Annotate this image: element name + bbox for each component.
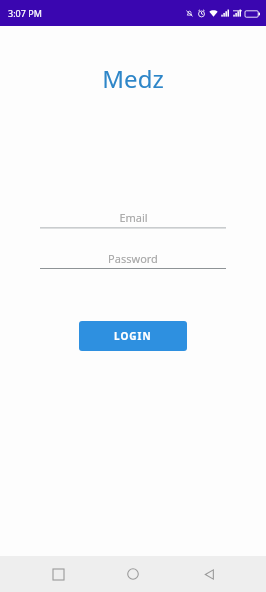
staticText: Medz [0,62,266,95]
button[interactable]: Back [191,556,227,592]
button[interactable]: Password [40,249,226,271]
button[interactable]: LOGIN [79,321,187,351]
staticText: LOGIN [114,329,152,343]
button[interactable]: Email [40,208,226,230]
button[interactable]: Recent apps [40,556,76,592]
button[interactable]: Home [115,556,151,592]
staticText: Password [108,251,158,266]
staticText: 3:07 PM [8,7,42,19]
staticText: Email [119,210,148,225]
